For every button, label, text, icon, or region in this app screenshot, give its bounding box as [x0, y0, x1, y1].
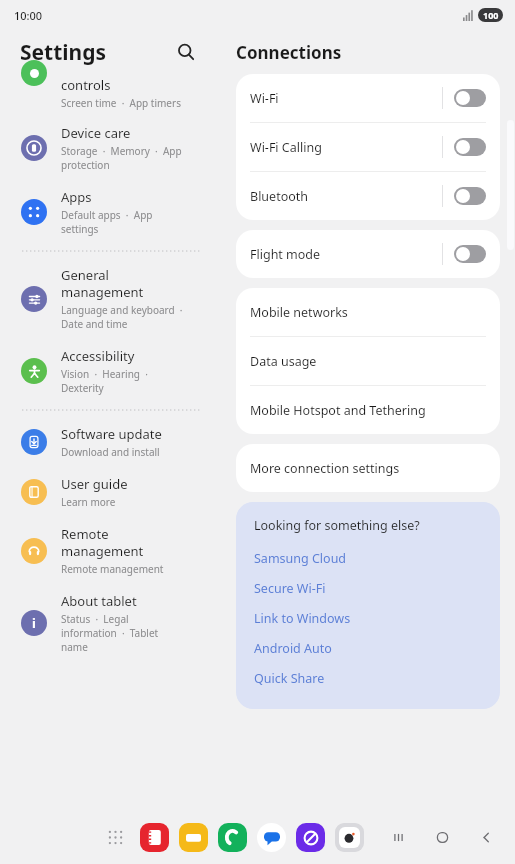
button[interactable]: Bluetooth [236, 172, 500, 220]
staticText: General management [61, 266, 144, 301]
staticText: Wi-Fi Calling [250, 139, 322, 156]
button[interactable]: More connection settings [236, 444, 500, 492]
button[interactable]: Toggle off [454, 138, 486, 156]
staticText: controls [61, 76, 111, 94]
button[interactable]: User guide [0, 467, 222, 517]
button[interactable]: Back [471, 822, 501, 852]
staticText: Default apps · App settings [61, 208, 153, 236]
staticText: About tablet [61, 592, 137, 610]
staticText: More connection settings [250, 460, 400, 477]
button[interactable]: Device care [0, 116, 222, 180]
button[interactable]: Search settings [170, 36, 202, 68]
button[interactable]: Messages [256, 822, 287, 853]
button[interactable]: General management [0, 258, 222, 339]
staticText: Mobile networks [250, 304, 348, 321]
staticText: Bluetooth [250, 188, 309, 205]
button[interactable]: Apps [0, 180, 222, 244]
staticText: Data usage [250, 353, 317, 370]
staticText: Secure Wi-Fi [254, 580, 326, 597]
button[interactable]: Mobile Hotspot and Tethering [236, 386, 500, 434]
staticText: Accessibility [61, 347, 135, 365]
staticText: Remote management [61, 562, 164, 576]
button[interactable]: Toggle off [454, 89, 486, 107]
button[interactable]: Secure Wi-Fi [254, 573, 486, 603]
button[interactable]: Wi-Fi [236, 74, 500, 122]
staticText: Quick Share [254, 670, 325, 687]
staticText: Link to Windows [254, 610, 351, 627]
button[interactable]: Toggle off [454, 245, 486, 263]
staticText: 10:00 [14, 8, 43, 23]
staticText: Vision · Hearing · Dexterity [61, 367, 148, 395]
button[interactable]: My Files [178, 822, 209, 853]
button[interactable]: Link to Windows [254, 603, 486, 633]
staticText: Mobile Hotspot and Tethering [250, 402, 426, 419]
button[interactable]: Internet [295, 822, 326, 853]
staticText: Apps [61, 188, 92, 206]
button[interactable]: Samsung Notes [139, 822, 170, 853]
button[interactable]: Flight mode [236, 230, 500, 278]
button[interactable]: Android Auto [254, 633, 486, 663]
staticText: Status · Legal information · Tablet name [61, 612, 159, 654]
button[interactable]: Software update [0, 417, 222, 467]
staticText: Android Auto [254, 640, 332, 657]
staticText: Wi-Fi [250, 90, 279, 107]
button[interactable]: Recent apps [383, 822, 413, 852]
staticText: Looking for something else? [254, 517, 420, 534]
button[interactable]: Accessibility [0, 339, 222, 403]
button[interactable]: Wi-Fi Calling [236, 123, 500, 171]
button[interactable]: Home [427, 822, 457, 852]
button[interactable]: Quick Share [254, 663, 486, 693]
staticText: User guide [61, 475, 128, 493]
staticText: Software update [61, 425, 162, 443]
button[interactable]: All apps [100, 822, 130, 852]
staticText: Flight mode [250, 246, 321, 263]
staticText: Settings [20, 38, 107, 67]
staticText: Samsung Cloud [254, 550, 347, 567]
button[interactable]: Remote management [0, 517, 222, 584]
staticText: Connections [236, 41, 342, 64]
button[interactable] [0, 74, 222, 116]
staticText: Language and keyboard · Date and time [61, 303, 183, 331]
button[interactable]: Data usage [236, 337, 500, 385]
button[interactable]: Camera [334, 822, 365, 853]
staticText: Device care [61, 124, 131, 142]
staticText: Storage · Memory · App protection [61, 144, 182, 172]
button[interactable]: i [0, 584, 222, 662]
staticText: 100 [483, 9, 499, 21]
button[interactable]: Toggle off [454, 187, 486, 205]
button[interactable]: Phone [217, 822, 248, 853]
button[interactable]: Mobile networks [236, 288, 500, 336]
staticText: Learn more [61, 495, 116, 509]
button[interactable]: Samsung Cloud [254, 543, 486, 573]
staticText: Download and install [61, 445, 160, 459]
staticText: i [32, 614, 36, 632]
staticText: Screen time · App timers [61, 96, 181, 110]
staticText: Remote management [61, 525, 144, 560]
